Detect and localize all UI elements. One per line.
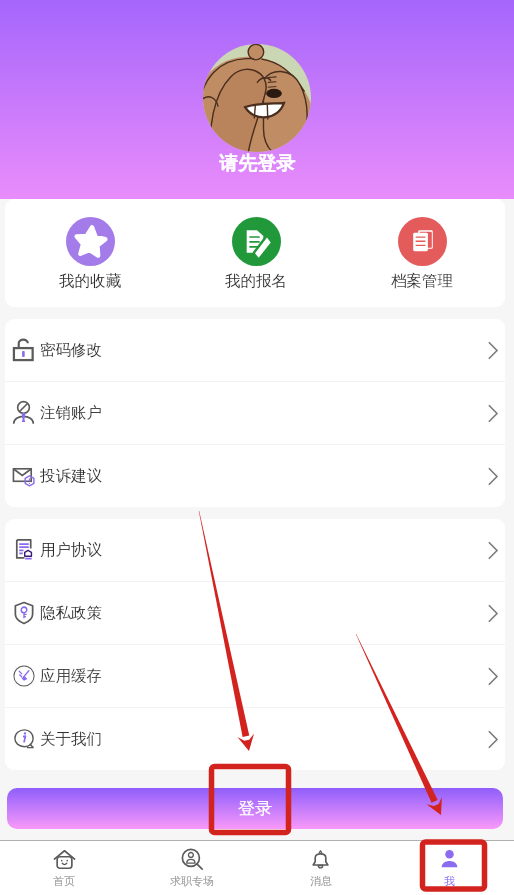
- staticText: 应用缓存: [40, 666, 102, 686]
- staticText: 请先登录: [219, 152, 295, 176]
- button[interactable]: 我: [385, 841, 514, 895]
- staticText: 消息: [310, 874, 332, 888]
- button[interactable]: 用户协议: [5, 519, 505, 581]
- button[interactable]: 档案管理: [339, 199, 505, 307]
- button[interactable]: 密码修改: [5, 319, 505, 381]
- button[interactable]: 注销账户: [5, 382, 505, 444]
- button[interactable]: 求职专场: [128, 841, 256, 895]
- staticText: 投诉建议: [40, 466, 102, 486]
- button[interactable]: 首页: [0, 841, 128, 895]
- staticText: 关于我们: [40, 729, 102, 749]
- button[interactable]: 登录: [7, 788, 503, 829]
- staticText: 档案管理: [391, 271, 453, 291]
- button[interactable]: 我的收藏: [7, 199, 173, 307]
- staticText: 密码修改: [40, 340, 102, 360]
- staticText: 隐私政策: [40, 603, 102, 623]
- button[interactable]: 应用缓存: [5, 645, 505, 707]
- staticText: 首页: [53, 874, 75, 888]
- staticText: 我的收藏: [59, 271, 121, 291]
- staticText: 求职专场: [170, 874, 214, 888]
- button[interactable]: 消息: [256, 841, 385, 895]
- button[interactable]: 投诉建议: [5, 445, 505, 507]
- staticText: 我: [444, 874, 455, 888]
- staticText: 用户协议: [40, 540, 102, 560]
- staticText: 我的报名: [225, 271, 287, 291]
- button[interactable]: 隐私政策: [5, 582, 505, 644]
- staticText: 注销账户: [40, 403, 102, 423]
- button[interactable]: 我的报名: [173, 199, 339, 307]
- staticText: 登录: [238, 798, 272, 819]
- button[interactable]: 关于我们: [5, 708, 505, 770]
